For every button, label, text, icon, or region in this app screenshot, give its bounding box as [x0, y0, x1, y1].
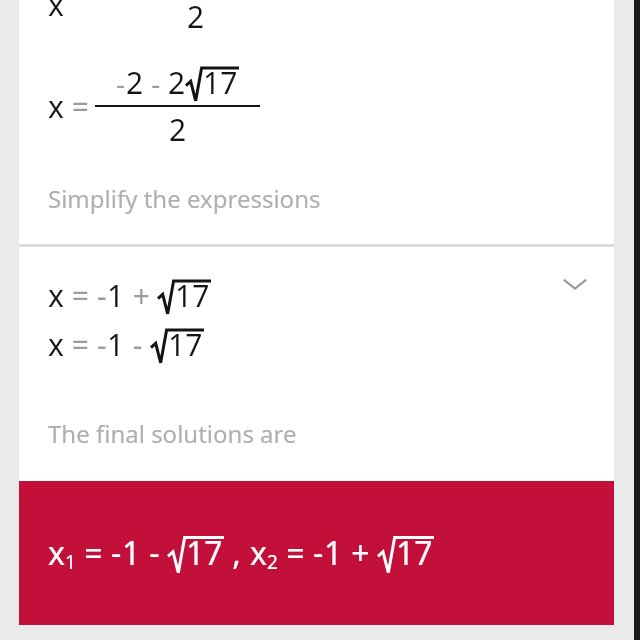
button[interactable]: Collapse step [552, 261, 598, 307]
staticText: The final solutions are [48, 417, 297, 450]
staticText: 1 [122, 531, 141, 575]
staticText: - [97, 324, 107, 365]
staticText: = [64, 324, 97, 365]
staticText: 2 [168, 62, 186, 103]
staticText: 17 [396, 531, 433, 573]
staticText: x [48, 275, 64, 316]
staticText: - [97, 275, 107, 316]
staticText: = [278, 531, 313, 575]
staticText: 2 [126, 62, 144, 103]
staticText: 1 [324, 531, 343, 575]
staticText: x [250, 531, 267, 575]
staticText: x [48, 0, 64, 25]
staticText: , [224, 531, 250, 575]
staticText: 2 [169, 109, 187, 150]
staticText: x [48, 531, 65, 575]
staticText: x [48, 324, 64, 365]
button[interactable]: x [19, 0, 614, 244]
staticText: - [313, 531, 324, 575]
staticText: - [111, 531, 122, 575]
staticText: + [343, 531, 378, 575]
staticText: - [125, 324, 151, 365]
staticText: 17 [186, 531, 223, 573]
staticText: = [64, 275, 97, 316]
staticText: 2 [187, 0, 205, 37]
staticText: - [116, 64, 126, 102]
button[interactable]: x [19, 247, 614, 481]
staticText: 17 [168, 324, 203, 363]
staticText: 1 [65, 549, 76, 575]
staticText: x [48, 86, 64, 127]
staticText: 17 [175, 275, 210, 314]
button[interactable]: x [19, 481, 614, 625]
staticText: 1 [107, 275, 125, 316]
staticText: + [125, 275, 158, 316]
staticText: 2 [267, 549, 278, 575]
staticText: Simplify the expressions [48, 182, 321, 215]
staticText: = [64, 86, 89, 127]
staticText: = [76, 531, 111, 575]
staticText: 17 [203, 62, 238, 101]
staticText: - [144, 64, 168, 102]
staticText: 1 [107, 324, 125, 365]
staticText: - [141, 531, 168, 575]
